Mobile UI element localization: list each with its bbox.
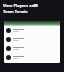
staticText: Team Tennis	[3, 9, 28, 14]
staticText: View Players on	[3, 3, 35, 8]
button[interactable]	[4, 35, 60, 44]
button[interactable]: Menu	[33, 4, 38, 7]
button[interactable]	[4, 44, 60, 53]
button[interactable]	[4, 53, 60, 62]
button[interactable]	[4, 26, 60, 35]
